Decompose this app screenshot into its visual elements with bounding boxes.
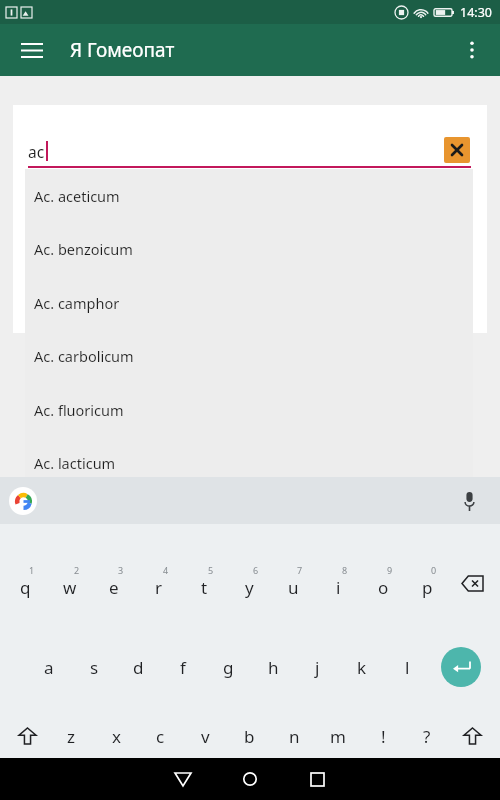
- staticText: g: [223, 656, 234, 679]
- button[interactable]: Open navigation drawer: [12, 30, 52, 70]
- staticText: b: [244, 725, 255, 748]
- button[interactable]: d: [116, 645, 160, 689]
- button[interactable]: c: [138, 714, 182, 758]
- button[interactable]: e: [92, 561, 136, 605]
- staticText: t: [201, 576, 208, 599]
- button[interactable]: Ac. lacticum: [25, 436, 473, 489]
- button[interactable]: q: [3, 561, 47, 605]
- button[interactable]: v: [183, 714, 227, 758]
- staticText: 5: [208, 564, 214, 576]
- staticText: 9: [387, 564, 393, 576]
- staticText: 2: [74, 564, 80, 576]
- button[interactable]: b: [227, 714, 271, 758]
- button[interactable]: Google search: [9, 487, 37, 515]
- staticText: Ac. benzoicum: [34, 239, 133, 259]
- button[interactable]: p: [405, 561, 449, 605]
- staticText: 6: [253, 564, 259, 576]
- staticText: k: [357, 656, 367, 679]
- staticText: n: [289, 725, 300, 748]
- button[interactable]: Clear search: [444, 137, 470, 163]
- button[interactable]: u: [271, 561, 315, 605]
- staticText: 1: [29, 564, 35, 576]
- button[interactable]: Recent apps: [291, 758, 343, 800]
- button[interactable]: ac: [28, 138, 438, 164]
- button[interactable]: k: [340, 645, 384, 689]
- staticText: 3: [118, 564, 124, 576]
- staticText: f: [180, 656, 186, 679]
- button[interactable]: x: [94, 714, 138, 758]
- staticText: ?: [423, 725, 431, 748]
- staticText: 14:30: [460, 4, 492, 21]
- button[interactable]: Voice input: [452, 484, 486, 518]
- staticText: h: [268, 656, 279, 679]
- staticText: r: [155, 576, 163, 599]
- button[interactable]: j: [295, 645, 339, 689]
- button[interactable]: z: [49, 714, 93, 758]
- button[interactable]: i: [316, 561, 360, 605]
- staticText: ac: [28, 141, 45, 162]
- staticText: Ac. fluoricum: [34, 400, 124, 420]
- staticText: x: [112, 725, 121, 748]
- staticText: i: [336, 576, 341, 599]
- button[interactable]: Ac. aceticum: [25, 169, 473, 222]
- staticText: q: [20, 576, 31, 599]
- button[interactable]: Ac. benzoicum: [25, 222, 473, 275]
- staticText: Ac. carbolicum: [34, 346, 134, 366]
- button[interactable]: l: [385, 645, 429, 689]
- button[interactable]: Backspace: [450, 561, 494, 605]
- staticText: l: [405, 656, 410, 679]
- button[interactable]: Ac. fluoricum: [25, 383, 473, 436]
- staticText: p: [422, 576, 433, 599]
- staticText: 0: [431, 564, 437, 576]
- staticText: 7: [297, 564, 303, 576]
- button[interactable]: w: [48, 561, 92, 605]
- staticText: z: [67, 725, 75, 748]
- button[interactable]: n: [272, 714, 316, 758]
- button[interactable]: More options: [452, 30, 492, 70]
- button[interactable]: Ac. camphor: [25, 276, 473, 329]
- staticText: 8: [342, 564, 348, 576]
- button[interactable]: s: [72, 645, 116, 689]
- button[interactable]: h: [251, 645, 295, 689]
- staticText: y: [245, 576, 254, 599]
- button[interactable]: o: [361, 561, 405, 605]
- button[interactable]: Shift: [5, 714, 49, 758]
- staticText: s: [90, 656, 99, 679]
- button[interactable]: Home: [224, 758, 276, 800]
- staticText: d: [133, 656, 144, 679]
- button[interactable]: Shift: [450, 714, 494, 758]
- button[interactable]: !: [361, 714, 405, 758]
- staticText: w: [63, 576, 77, 599]
- button[interactable]: Ac. carbolicum: [25, 329, 473, 382]
- staticText: v: [201, 725, 210, 748]
- staticText: a: [44, 656, 54, 679]
- button[interactable]: a: [27, 645, 71, 689]
- button[interactable]: Enter: [439, 645, 483, 689]
- staticText: o: [378, 576, 389, 599]
- staticText: u: [288, 576, 299, 599]
- staticText: Ac. camphor: [34, 293, 120, 313]
- button[interactable]: f: [161, 645, 205, 689]
- button[interactable]: y: [227, 561, 271, 605]
- staticText: Я Гомеопат: [70, 37, 175, 63]
- button[interactable]: t: [182, 561, 226, 605]
- staticText: 4: [163, 564, 169, 576]
- button[interactable]: Back: [157, 758, 209, 800]
- staticText: Ac. aceticum: [34, 186, 120, 206]
- staticText: j: [315, 656, 320, 679]
- button[interactable]: r: [137, 561, 181, 605]
- button[interactable]: g: [206, 645, 250, 689]
- staticText: !: [381, 725, 386, 748]
- button[interactable]: Space: [148, 772, 352, 786]
- button[interactable]: ?: [405, 714, 449, 758]
- button[interactable]: m: [316, 714, 360, 758]
